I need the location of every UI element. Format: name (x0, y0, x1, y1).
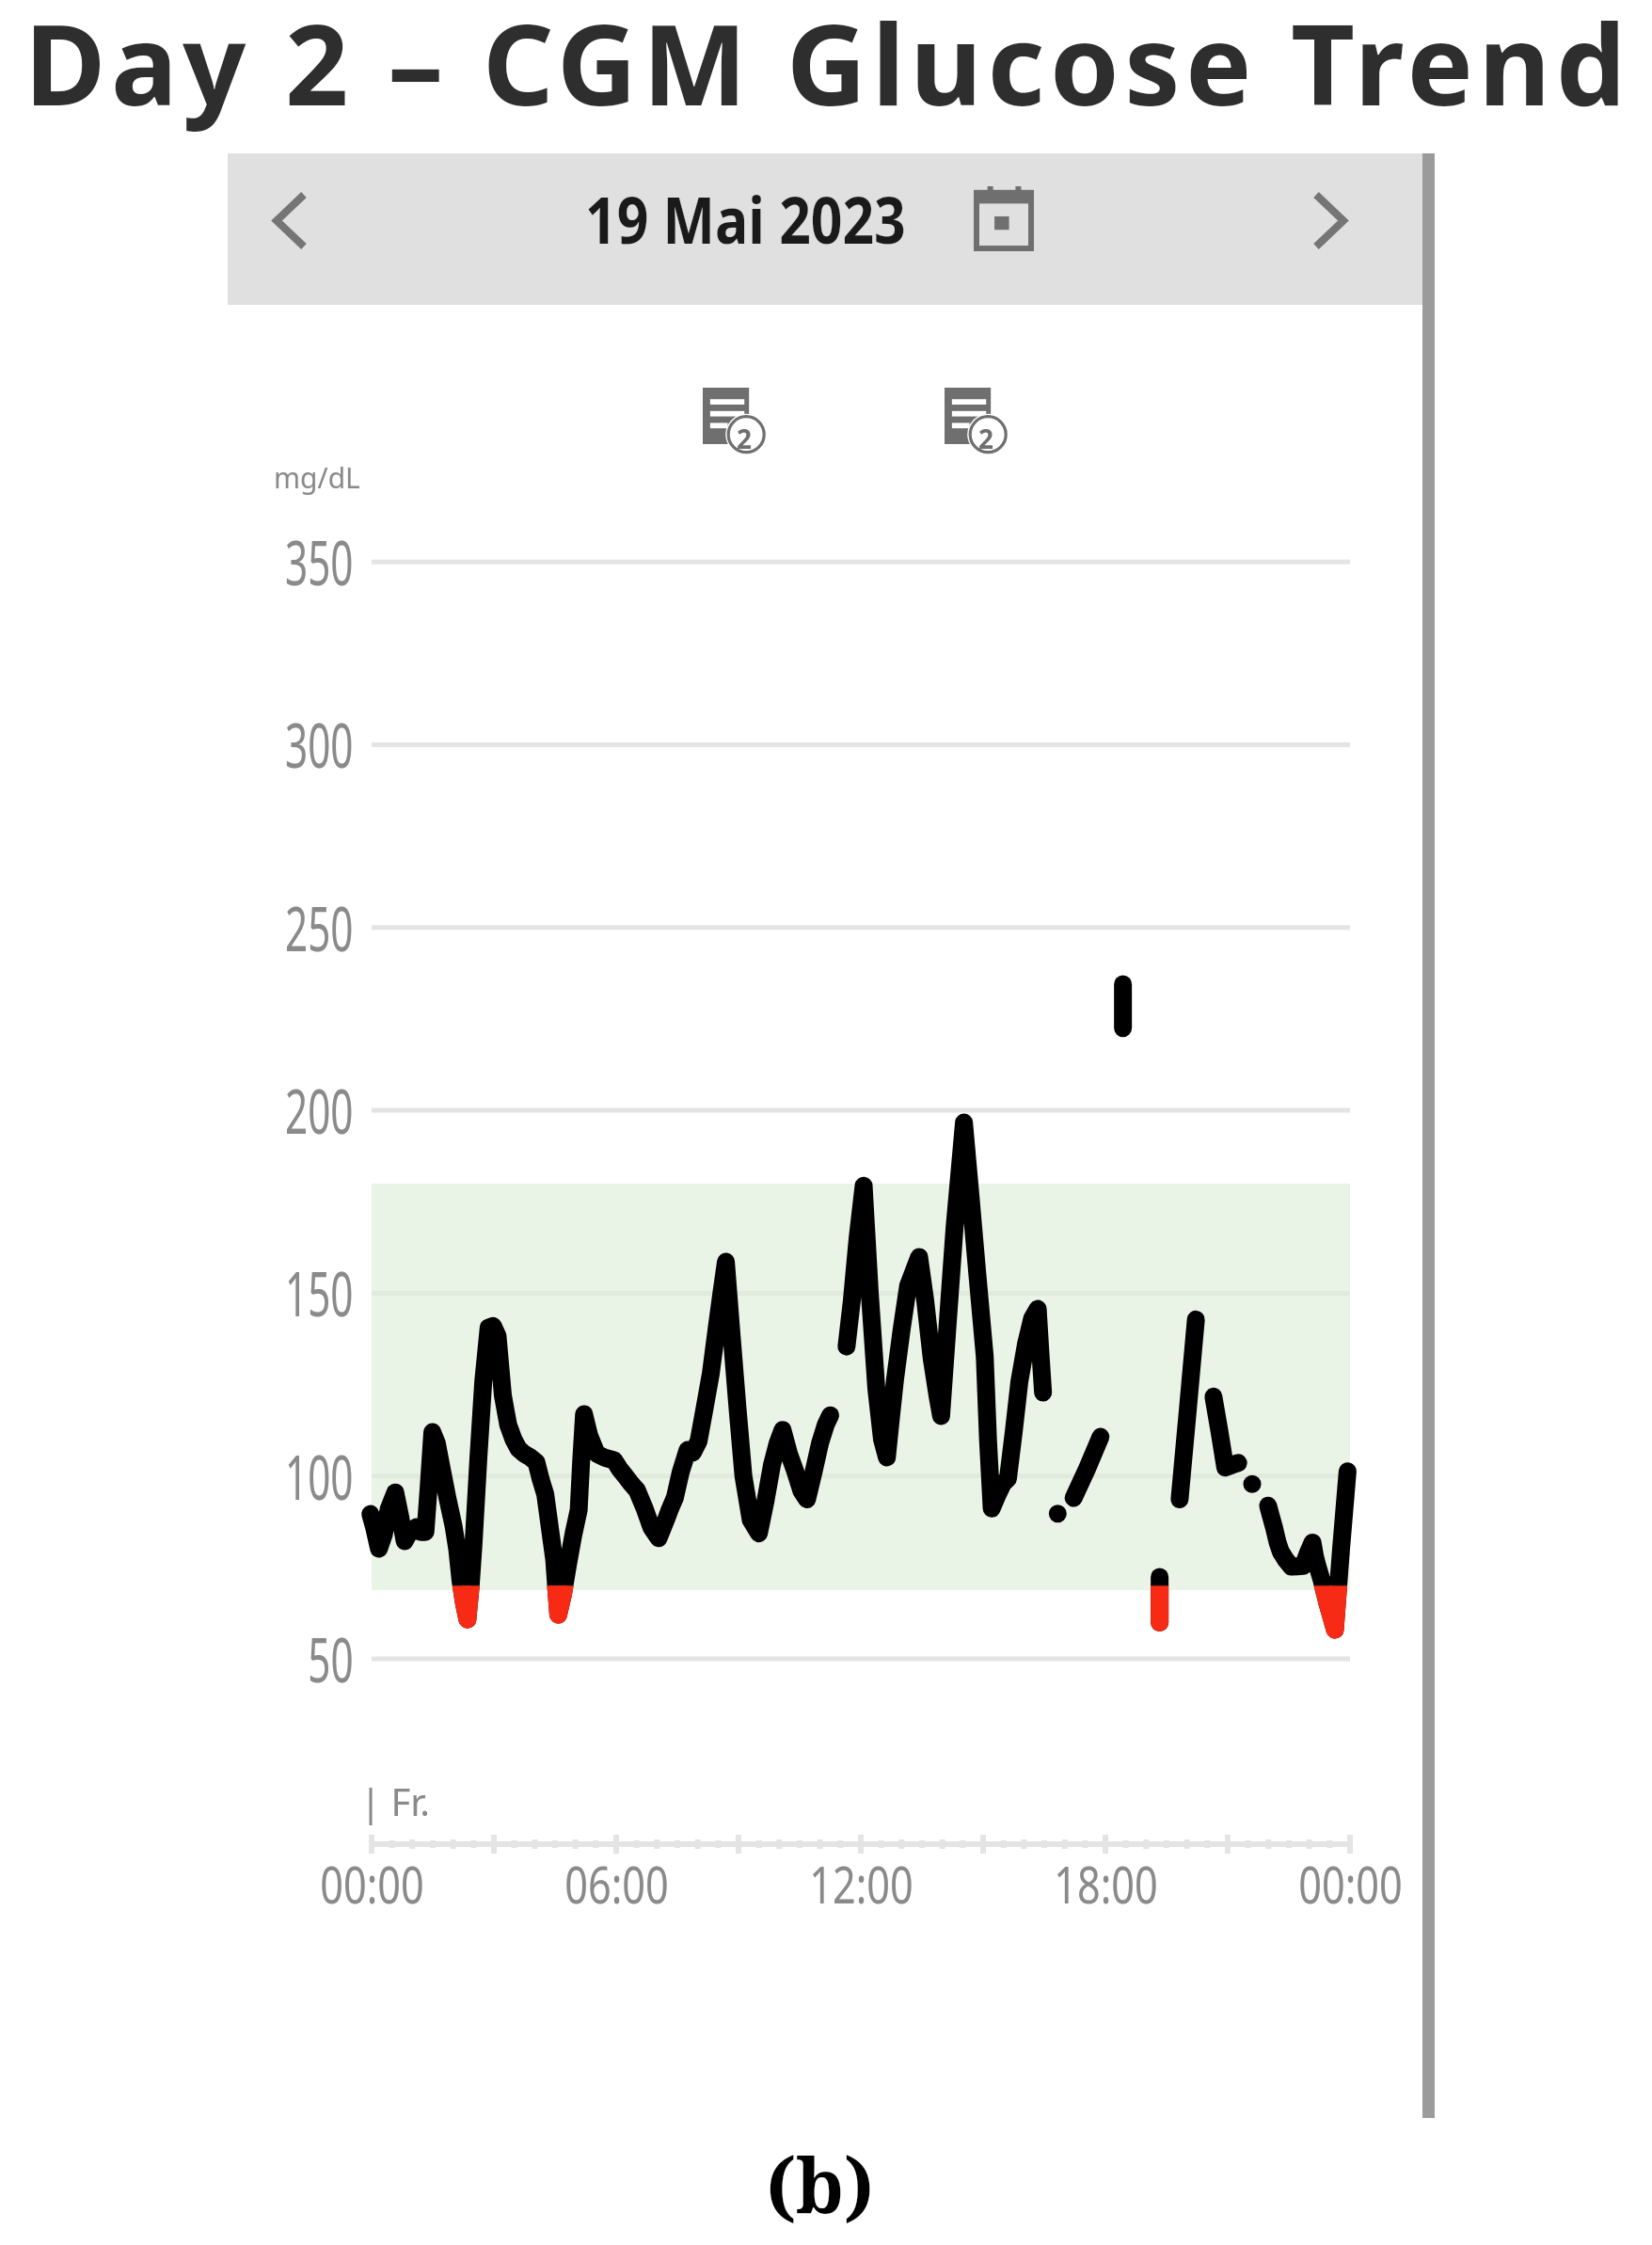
staticText: 18:00 (1054, 1849, 1158, 1919)
staticText: 19 Mai 2023 (585, 175, 906, 263)
staticText: 300 (285, 701, 354, 786)
staticText: mg/dL (274, 458, 360, 497)
staticText: (b) (766, 2134, 874, 2236)
staticText: | Fr. (360, 1775, 431, 1826)
button[interactable]: Previous day (233, 145, 346, 296)
staticText: 00:00 (1298, 1849, 1403, 1919)
staticText: 150 (285, 1250, 354, 1334)
button[interactable]: 2 notes (703, 388, 765, 454)
button[interactable]: 19 Mai 2023 (585, 167, 1033, 270)
staticText: Day 2 – CGM Glucose Trend (24, 0, 1631, 138)
staticText: 250 (285, 884, 354, 969)
staticText: 200 (285, 1067, 354, 1152)
staticText: 50 (308, 1616, 354, 1700)
staticText: 100 (285, 1433, 354, 1518)
staticText: 06:00 (564, 1849, 669, 1919)
staticText: 350 (285, 518, 354, 603)
staticText: 2 (978, 421, 994, 456)
staticText: 00:00 (320, 1849, 424, 1919)
button[interactable]: 2 notes (945, 388, 1007, 454)
staticText: 12:00 (809, 1849, 914, 1919)
button[interactable]: Next day (1273, 145, 1386, 296)
staticText: 2 (737, 421, 753, 456)
